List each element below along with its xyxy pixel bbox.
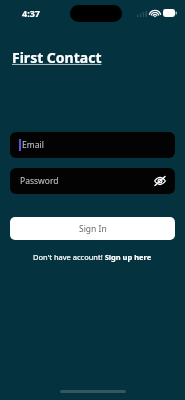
button[interactable]: Sign In — [10, 217, 175, 240]
button[interactable]: Email — [10, 132, 175, 158]
button[interactable]: Password — [10, 168, 175, 194]
staticText: First Contact — [12, 48, 102, 67]
staticText: Don't have account! Sign up here — [33, 252, 152, 262]
button[interactable]: Don't have account! Sign up here — [33, 252, 152, 262]
staticText: 4:37 — [22, 7, 40, 19]
button[interactable]: Show password — [153, 174, 167, 188]
staticText: Sign In — [79, 223, 107, 235]
staticText: Email — [22, 139, 44, 151]
staticText: Password — [20, 175, 59, 187]
